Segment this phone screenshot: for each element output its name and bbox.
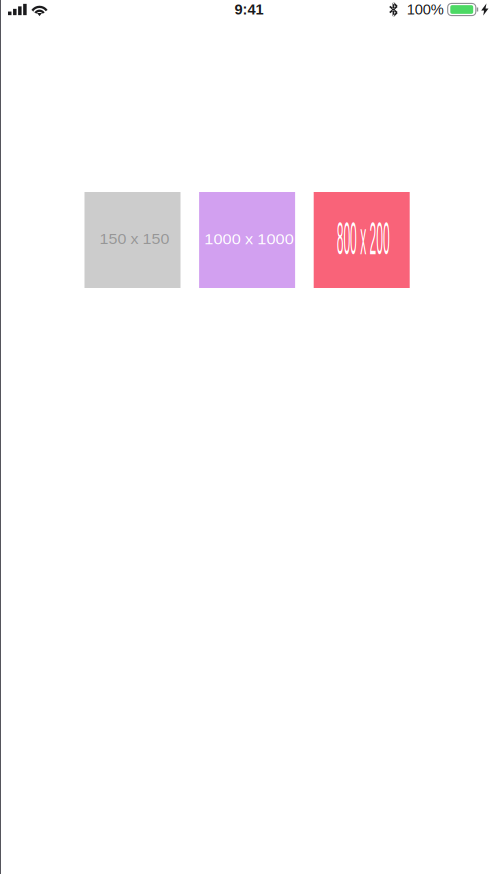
staticText: 1000 x 1000 [205, 230, 293, 248]
staticText: 800 x 200 [253, 210, 474, 266]
staticText: 100% [407, 1, 444, 18]
staticText: 9:41 [234, 1, 263, 18]
staticText: 150 x 150 [99, 230, 169, 248]
